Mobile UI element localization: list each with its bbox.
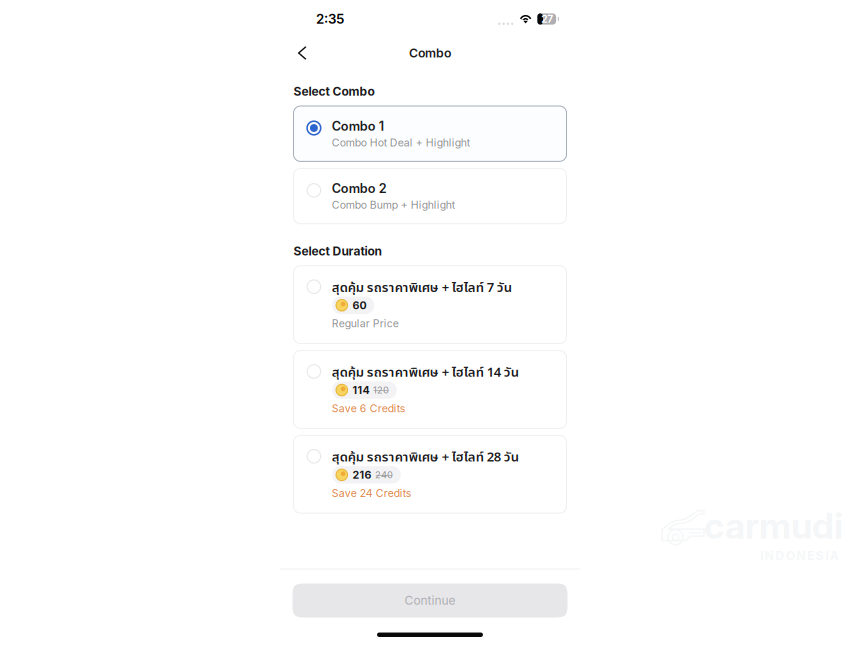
staticText: Combo 2 [332,181,387,196]
staticText: 60 [353,299,367,312]
staticText: สุดคุ้ม รถราคาพิเศษ + ไฮไลท์ 28 วัน [332,448,519,467]
button[interactable]: Combo 2 [293,168,566,224]
button[interactable]: Continue [292,583,567,617]
staticText: Save 6 Credits [332,402,406,415]
staticText: INDONESIA [760,548,839,563]
staticText: Select Duration [293,244,381,258]
staticText: สุดคุ้ม รถราคาพิเศษ + ไฮไลท์ 14 วัน [332,363,519,383]
staticText: Combo [409,46,451,60]
button[interactable]: สุดคุ้ม รถราคาพิเศษ + ไฮไลท์ 7 วัน [293,266,566,344]
staticText: Combo Hot Deal + Highlight [332,136,470,149]
button[interactable]: Back [280,39,321,67]
staticText: carmudi [704,504,843,547]
staticText: 216 [353,468,372,481]
staticText: 114 [353,384,370,396]
button[interactable]: สุดคุ้ม รถราคาพิเศษ + ไฮไลท์ 28 วัน [293,435,566,513]
staticText: Save 24 Credits [332,487,412,499]
staticText: Combo Bump + Highlight [332,199,455,211]
staticText: 27 [541,13,553,25]
staticText: Regular Price [332,317,399,330]
staticText: 240 [375,469,393,480]
staticText: Select Combo [293,84,374,98]
staticText: Continue [404,593,455,608]
staticText: สุดคุ้ม รถราคาพิเศษ + ไฮไลท์ 7 วัน [332,278,512,298]
staticText: 2:35 [316,11,344,27]
staticText: Combo 1 [332,118,384,134]
button[interactable]: สุดคุ้ม รถราคาพิเศษ + ไฮไลท์ 14 วัน [293,351,566,428]
staticText: 120 [373,384,389,396]
button[interactable]: Combo 1 [293,106,566,161]
